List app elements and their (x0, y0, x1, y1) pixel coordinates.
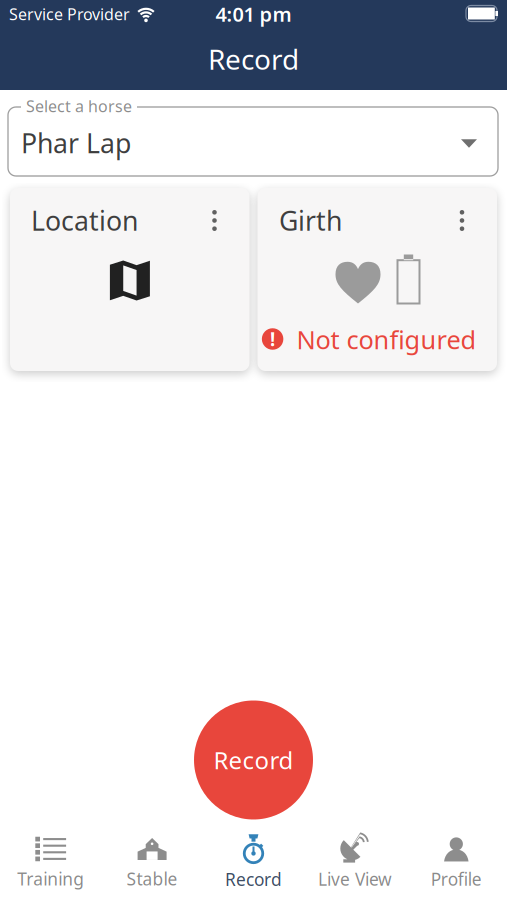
staticText: ! (270, 327, 275, 351)
button[interactable]: Location options (202, 207, 226, 233)
staticText: Location (31, 203, 138, 238)
staticText: Live View (318, 867, 392, 890)
staticText: Girth (279, 203, 342, 238)
staticText: 4:01 pm (215, 1, 291, 27)
button[interactable]: Profile (431, 836, 482, 890)
button[interactable]: Select a horse (0, 0, 507, 900)
staticText: Training (17, 867, 84, 890)
button[interactable]: Live View (318, 836, 392, 890)
staticText: Select a horse (26, 95, 132, 117)
staticText: Record (225, 868, 282, 891)
staticText: Profile (431, 867, 482, 890)
button[interactable]: Girth options (450, 207, 474, 233)
button[interactable]: Record (194, 700, 313, 819)
staticText: Phar Lap (21, 125, 131, 161)
button[interactable]: Training (17, 837, 84, 890)
staticText: Record (208, 40, 299, 78)
staticText: Service Provider (9, 3, 130, 25)
button[interactable]: Record (225, 834, 282, 891)
button[interactable]: Stable (127, 837, 178, 890)
staticText: Record (213, 744, 293, 776)
staticText: Stable (127, 867, 178, 890)
staticText: Not configured (296, 323, 476, 356)
